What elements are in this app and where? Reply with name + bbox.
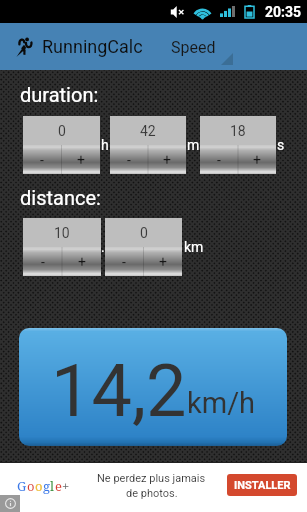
staticText: g [43,477,50,495]
staticText: . [101,239,105,255]
button[interactable]: 10 [23,218,101,247]
staticText: km/h [187,386,256,420]
staticText: 42 [140,123,156,139]
button[interactable]: 14,2 [19,328,287,446]
button[interactable]: 0 [23,116,100,145]
staticText: 0 [58,123,66,139]
staticText: + [77,152,85,168]
staticText: 14,2 [51,349,187,433]
staticText: RunningCalc [42,36,143,57]
button[interactable]: Speed [162,23,238,70]
button[interactable]: G [0,462,307,512]
staticText: 10 [54,225,70,241]
staticText: h [101,137,109,153]
button[interactable]: decrease [23,247,62,276]
staticText: s [277,137,285,153]
button[interactable]: decrease [105,247,143,276]
button[interactable]: increase [238,145,276,174]
staticText: + [159,254,167,270]
button[interactable]: decrease [110,145,148,174]
staticText: - [122,254,126,270]
staticText: + [253,152,261,168]
staticText: 0 [140,225,148,241]
button[interactable]: increase [61,145,100,174]
button[interactable]: 42 [110,116,186,145]
staticText: + [62,477,70,495]
staticText: INSTALLER [234,479,291,492]
staticText: - [41,254,45,270]
button[interactable]: Ad info [0,495,20,512]
button[interactable]: 0 [105,218,182,247]
staticText: de photos. [126,487,178,500]
other: App logo [16,36,36,57]
staticText: o [27,477,35,495]
staticText: + [163,152,171,168]
button[interactable]: increase [143,247,182,276]
staticText: Ne perdez plus jamais [97,472,206,485]
staticText: km [184,239,204,255]
staticText: - [217,152,221,168]
staticText: m [187,137,200,153]
button[interactable]: INSTALLER [227,474,297,496]
button[interactable]: increase [62,247,101,276]
button[interactable]: decrease [23,145,61,174]
staticText: Speed [171,38,216,57]
button[interactable]: increase [148,145,186,174]
staticText: o [35,477,43,495]
button[interactable]: decrease [200,145,238,174]
staticText: 18 [230,123,246,139]
staticText: - [127,152,131,168]
staticText: 20:35 [265,4,302,20]
staticText: G [17,477,27,495]
staticText: - [40,152,44,168]
staticText: distance: [20,186,101,209]
staticText: e [55,477,62,495]
staticText: duration: [20,83,99,106]
button[interactable]: 18 [200,116,276,145]
staticText: + [78,254,86,270]
staticText: l [50,477,55,495]
